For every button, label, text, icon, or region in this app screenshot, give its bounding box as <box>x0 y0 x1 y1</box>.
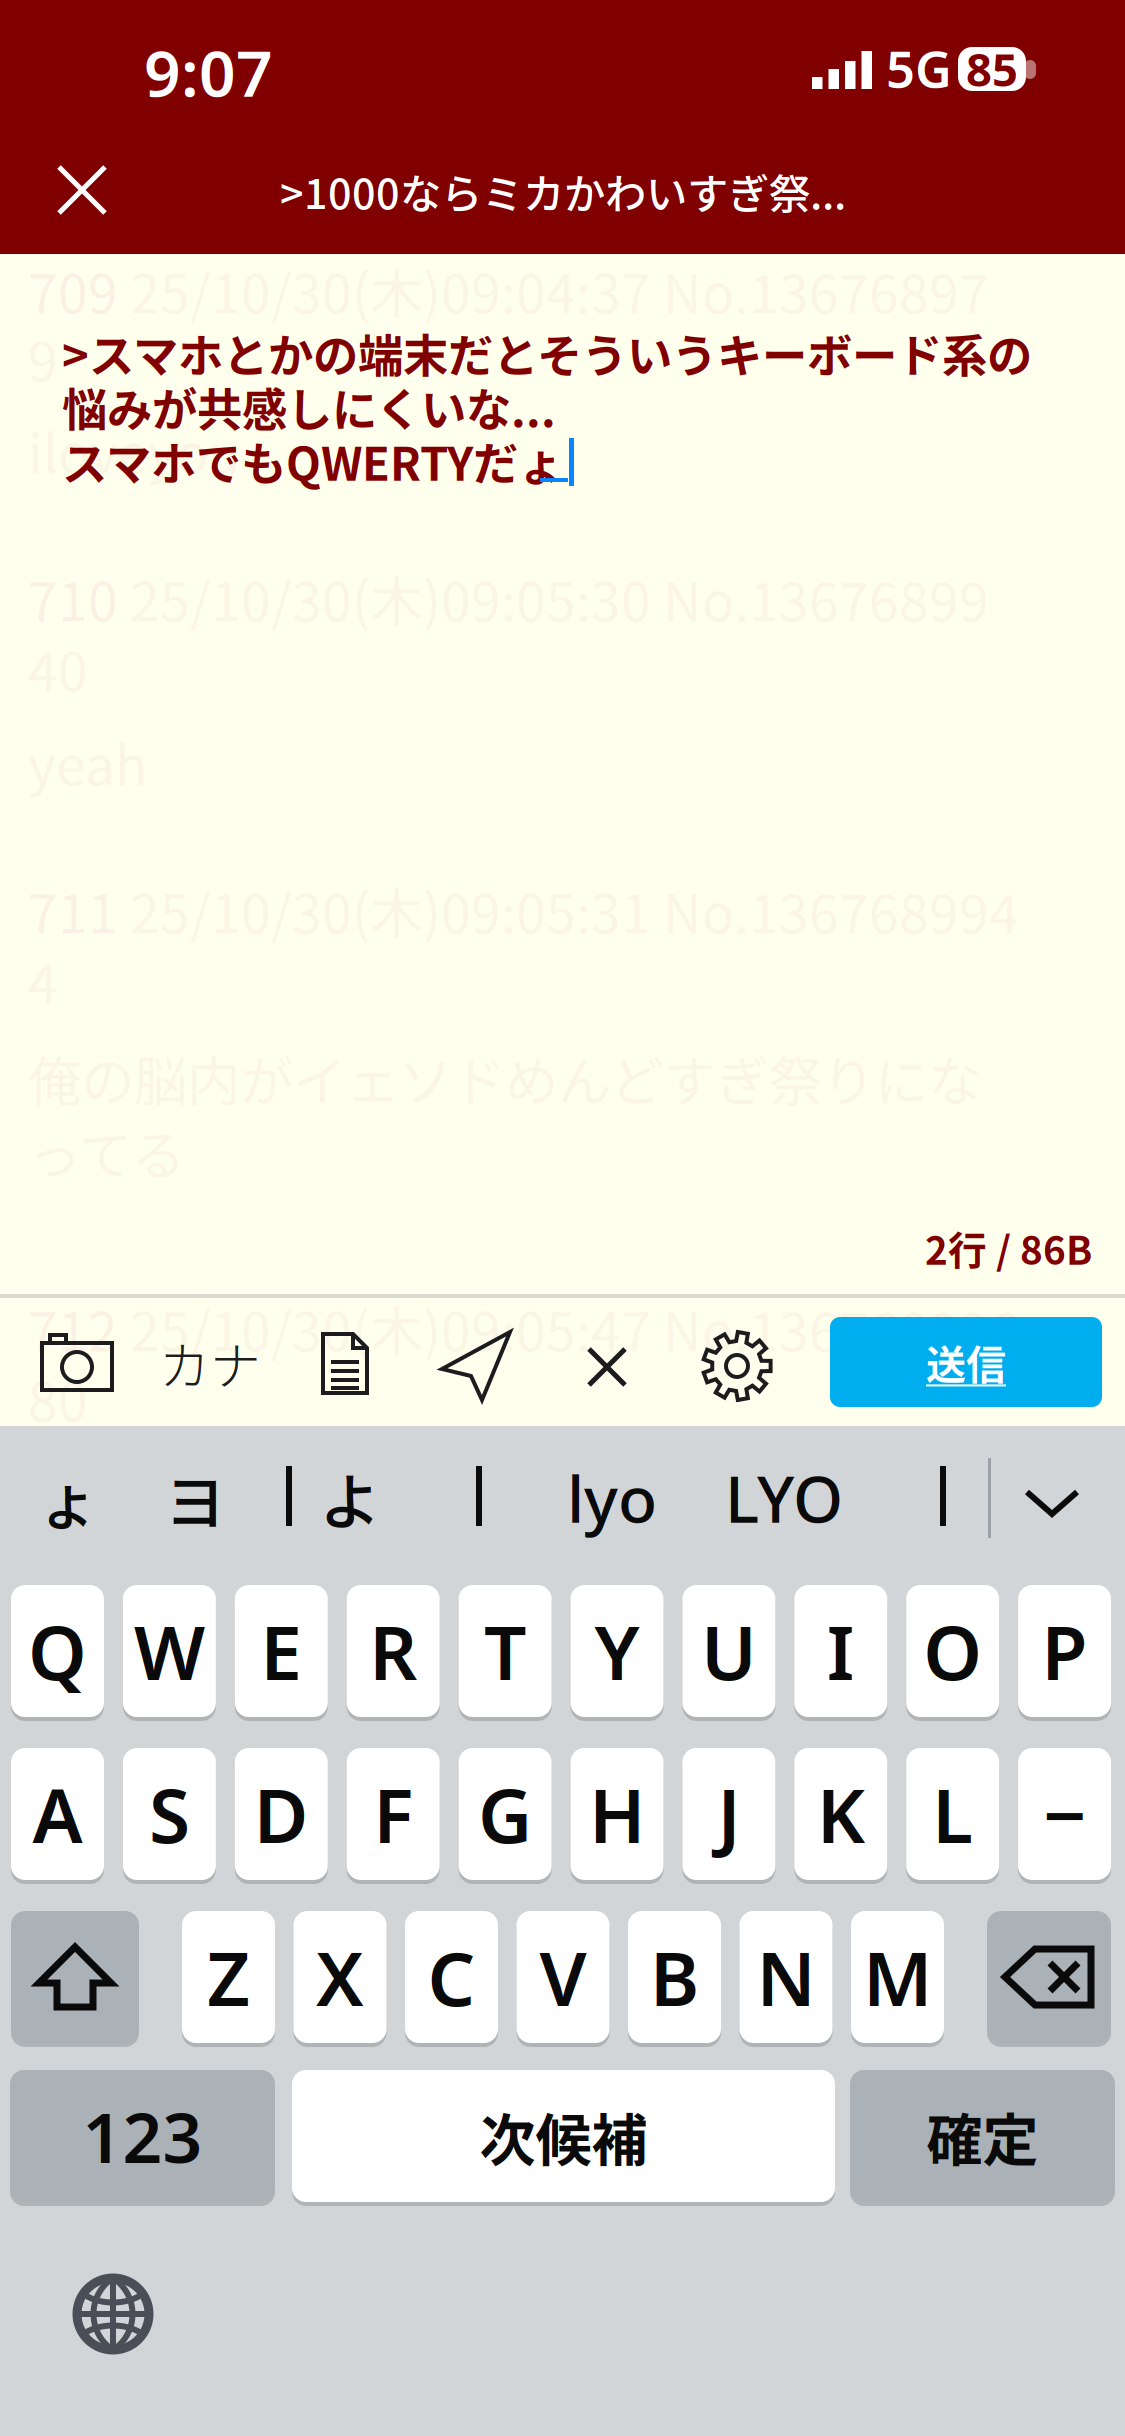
button[interactable]: V <box>516 1911 609 2047</box>
staticText: yeah <box>28 723 147 801</box>
button[interactable]: D <box>235 1748 328 1884</box>
staticText: R <box>369 1601 417 1701</box>
staticText: 次候補 <box>479 2095 647 2177</box>
button[interactable]: P <box>1018 1585 1111 1721</box>
button[interactable]: C <box>405 1911 498 2047</box>
button[interactable]: Shift <box>11 1911 139 2047</box>
staticText: L <box>932 1764 973 1864</box>
button[interactable]: G <box>459 1748 552 1884</box>
staticText: C <box>427 1927 475 2027</box>
button[interactable]: Close <box>37 145 127 235</box>
button[interactable]: T <box>459 1585 552 1721</box>
staticText: 710 <box>28 559 130 637</box>
staticText: Y <box>594 1601 639 1701</box>
staticText: 709 <box>28 251 130 329</box>
staticText: 確定 <box>926 2095 1038 2177</box>
button[interactable]: 送信 <box>830 1317 1102 1407</box>
staticText: O <box>923 1601 982 1701</box>
staticText: W <box>134 1601 205 1701</box>
staticText: 712 <box>28 1289 130 1367</box>
button[interactable]: ヨ <box>135 1438 255 1558</box>
button[interactable]: R <box>347 1585 440 1721</box>
button[interactable]: Attach photo <box>30 1316 124 1410</box>
staticText: lyo <box>567 1455 657 1540</box>
button[interactable]: F <box>347 1748 440 1884</box>
staticText: V <box>539 1927 586 2027</box>
button[interactable]: O <box>906 1585 999 1721</box>
button[interactable]: M <box>851 1911 944 2047</box>
button[interactable]: Settings <box>690 1316 784 1410</box>
staticText: I <box>827 1601 855 1701</box>
staticText: 25/10/30(木)09:05:47 No.136768996 <box>130 1289 1019 1367</box>
staticText: D <box>254 1764 309 1864</box>
button[interactable]: Q <box>11 1585 104 1721</box>
button[interactable]: K <box>794 1748 887 1884</box>
staticText: iloveyou <box>28 411 240 489</box>
staticText: 85 <box>966 39 1018 99</box>
staticText: H <box>589 1764 645 1864</box>
staticText: S <box>149 1764 190 1864</box>
staticText: 123 <box>82 2090 202 2182</box>
staticText: 80 <box>28 1359 88 1437</box>
button[interactable]: Quote <box>428 1316 522 1410</box>
button[interactable]: L <box>906 1748 999 1884</box>
staticText: 711 <box>28 871 130 949</box>
button[interactable]: J <box>682 1748 775 1884</box>
staticText: 40 <box>28 629 88 707</box>
staticText: 送信 <box>926 1333 1006 1391</box>
button[interactable]: カナ <box>150 1316 270 1410</box>
button[interactable]: 123 <box>10 2070 275 2206</box>
button[interactable]: Switch keyboard <box>72 2273 154 2355</box>
button[interactable]: S <box>123 1748 216 1884</box>
button[interactable]: I <box>794 1585 887 1721</box>
button[interactable]: Z <box>182 1911 275 2047</box>
button[interactable]: − <box>1018 1748 1111 1884</box>
staticText: X <box>316 1927 364 2027</box>
button[interactable]: H <box>570 1748 663 1884</box>
staticText: 25/10/30(木)09:05:31 No.136768994 <box>130 871 1019 949</box>
button[interactable]: よ <box>300 1438 400 1558</box>
button[interactable]: Y <box>570 1585 663 1721</box>
button[interactable]: A <box>11 1748 104 1884</box>
staticText: K <box>817 1764 865 1864</box>
staticText: B <box>650 1927 699 2027</box>
button[interactable]: 確定 <box>850 2070 1115 2206</box>
button[interactable]: Templates <box>298 1316 392 1410</box>
button[interactable]: ょ <box>8 1438 128 1558</box>
staticText: 悩みが共感しにくいな... <box>62 374 556 440</box>
staticText: 5G <box>886 34 952 102</box>
button[interactable]: Delete <box>987 1911 1111 2047</box>
staticText: E <box>260 1601 302 1701</box>
staticText: Z <box>207 1927 250 2027</box>
button[interactable]: LYO <box>714 1438 854 1558</box>
staticText: よ <box>319 1454 380 1542</box>
staticText: カナ <box>159 1326 261 1400</box>
button[interactable]: Clear text <box>560 1316 654 1410</box>
button[interactable]: lyo <box>552 1438 672 1558</box>
button[interactable]: U <box>682 1585 775 1721</box>
staticText: J <box>717 1764 740 1864</box>
staticText: ょ <box>37 1454 98 1542</box>
button[interactable]: Expand candidates <box>1007 1470 1097 1530</box>
button[interactable]: X <box>293 1911 386 2047</box>
staticText: A <box>32 1764 82 1864</box>
staticText: Q <box>28 1601 87 1701</box>
staticText: 9:07 <box>144 29 273 114</box>
button[interactable]: N <box>739 1911 832 2047</box>
staticText: F <box>373 1764 413 1864</box>
staticText: N <box>756 1927 815 2027</box>
button[interactable]: E <box>235 1585 328 1721</box>
staticText: スマホでもQWERTYだょ <box>62 428 563 494</box>
button[interactable]: B <box>628 1911 721 2047</box>
staticText: G <box>478 1764 532 1864</box>
button[interactable]: 次候補 <box>292 2070 835 2206</box>
staticText: ヨ <box>164 1454 225 1542</box>
staticText: LYO <box>725 1455 843 1540</box>
button[interactable]: W <box>123 1585 216 1721</box>
staticText: U <box>701 1601 757 1701</box>
staticText: M <box>863 1927 932 2027</box>
staticText: 25/10/30(木)09:04:37 No.13676897 <box>130 251 989 329</box>
staticText: T <box>484 1601 526 1701</box>
staticText: 2行 / 86B <box>925 1220 1092 1276</box>
